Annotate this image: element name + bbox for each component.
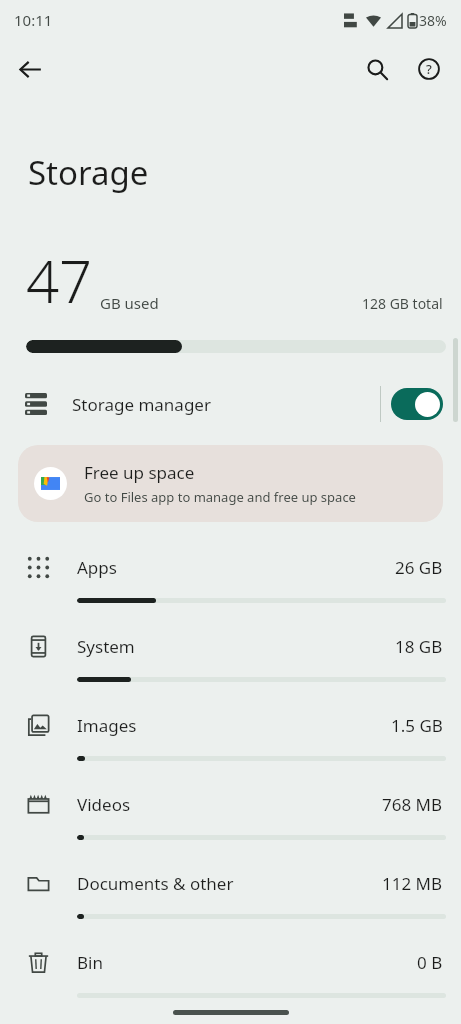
staticText: Videos — [77, 793, 382, 816]
button[interactable]: Help — [407, 47, 451, 91]
staticText: Storage manager — [72, 393, 380, 416]
staticText: 1.5 GB — [391, 714, 443, 737]
staticText: System — [77, 635, 395, 658]
staticText: 18 GB — [395, 635, 443, 658]
button[interactable]: System — [0, 615, 461, 694]
button[interactable]: Images — [0, 694, 461, 773]
staticText: 768 MB — [382, 793, 443, 816]
staticText: Apps — [77, 556, 395, 579]
staticText: Free up space — [84, 461, 195, 484]
staticText: ? — [426, 60, 432, 78]
staticText: Go to Files app to manage and free up sp… — [84, 488, 356, 506]
staticText: 10:11 — [14, 10, 53, 30]
staticText: GB used — [100, 293, 159, 313]
staticText: 38% — [419, 11, 447, 30]
staticText: Bin — [77, 951, 417, 974]
button[interactable]: Search — [355, 47, 399, 91]
staticText: 128 GB total — [362, 294, 443, 313]
button[interactable]: Apps — [0, 536, 461, 615]
button[interactable]: Free up space — [18, 445, 443, 522]
staticText: 112 MB — [382, 872, 443, 895]
staticText: 26 GB — [395, 556, 443, 579]
button[interactable]: Videos — [0, 773, 461, 852]
button[interactable]: Documents & other — [0, 852, 461, 931]
staticText: Images — [77, 714, 391, 737]
button[interactable]: Storage manager — [0, 377, 461, 431]
button[interactable]: Storage manager toggle — [391, 388, 443, 420]
button[interactable]: Bin — [0, 931, 461, 1010]
staticText: Storage — [28, 150, 149, 195]
staticText: Documents & other — [77, 872, 382, 895]
staticText: 47 — [26, 241, 93, 320]
button[interactable]: Back — [8, 47, 52, 91]
staticText: 0 B — [417, 951, 443, 974]
